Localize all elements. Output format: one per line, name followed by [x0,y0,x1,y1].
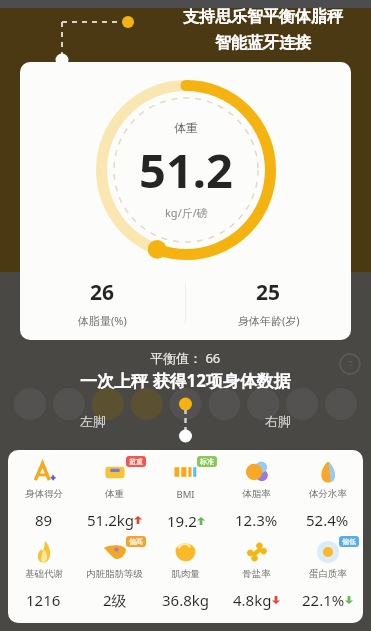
staticText: 52.4% [306,510,349,530]
button[interactable]: 偏高 [79,536,150,617]
staticText: 51.2kg [87,510,134,530]
staticText: 身体得分 [25,488,63,500]
staticText: 36.8kg [162,590,209,610]
button[interactable]: 26 [20,266,185,340]
button[interactable]: 体脂率 [221,456,292,536]
staticText: 偏高 [129,537,143,546]
staticText: 体分水率 [309,488,347,500]
button[interactable]: 身体得分 [8,450,363,623]
staticText: 22.1% [302,590,345,610]
staticText: 25 [256,278,281,307]
staticText: 内脏脂肪等级 [86,568,143,580]
staticText: 体重 [105,488,124,500]
staticText: 89 [35,510,53,530]
staticText: 支持思乐智平衡体脂秤 [183,7,343,27]
staticText: 51.2 [139,138,233,202]
button[interactable]: 肌肉量 [150,536,221,617]
staticText: 体重 [174,120,198,135]
staticText: 2级 [103,590,127,610]
button[interactable]: 偏低 [292,536,363,617]
staticText: 19.2 [167,511,197,531]
staticText: 右脚 [265,413,291,429]
staticText: 标准 [200,457,214,466]
staticText: 骨盐率 [242,568,271,580]
staticText: 平衡值： 66 [150,349,221,367]
button[interactable]: Help [339,353,361,375]
button[interactable]: 基础代谢 [8,536,79,617]
staticText: 身体年龄(岁) [238,313,300,328]
staticText: BMI [176,488,195,501]
button[interactable]: 身体得分 [8,456,79,536]
staticText: 一次上秤 获得12项身体数据 [80,369,291,392]
button[interactable]: 超重 [79,456,150,536]
button[interactable]: 标准 [150,456,221,536]
button[interactable]: 25 [186,266,351,340]
button[interactable]: 体重 [20,62,351,340]
staticText: 26 [90,278,115,307]
button[interactable]: 骨盐率 [221,536,292,617]
staticText: 左脚 [80,413,106,429]
staticText: 体脂量(%) [78,313,127,328]
staticText: 12.3% [235,510,278,530]
staticText: 蛋白质率 [309,568,347,580]
staticText: 偏低 [342,537,356,546]
staticText: 基础代谢 [25,568,63,580]
staticText: 体脂率 [242,488,271,500]
staticText: 4.8kg [233,590,272,610]
staticText: kg/斤/磅 [165,205,208,220]
staticText: 肌肉量 [171,568,200,580]
staticText: 1216 [26,590,61,610]
staticText: 超重 [129,457,143,466]
staticText: ? [348,357,353,372]
button[interactable]: 体分水率 [292,456,363,536]
staticText: 智能蓝牙连接 [215,33,311,53]
